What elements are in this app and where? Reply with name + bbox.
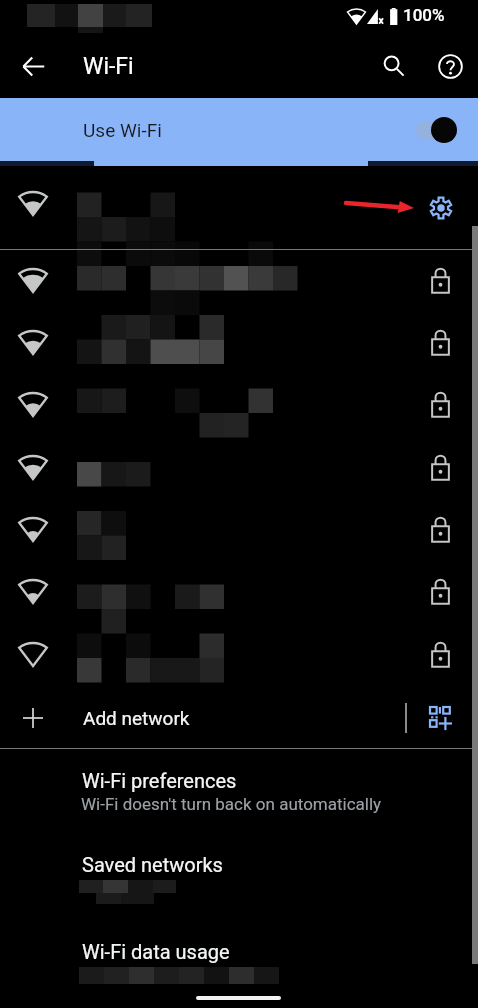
button[interactable] [0, 374, 478, 436]
staticText: Wi-Fi data usage [82, 940, 230, 963]
staticText: Wi-Fi preferences [82, 769, 237, 792]
button[interactable]: Back [11, 44, 55, 88]
staticText: 100% [403, 5, 445, 25]
button[interactable]: Wi-Fi data usage [0, 928, 478, 990]
staticText: Wi-Fi [83, 53, 134, 80]
button[interactable]: Use Wi-Fi [0, 98, 478, 161]
button[interactable] [0, 166, 478, 249]
button[interactable]: Saved networks [0, 840, 478, 902]
button[interactable] [0, 624, 478, 686]
button[interactable] [0, 437, 478, 499]
staticText: Use Wi-Fi [83, 119, 162, 141]
button[interactable] [0, 499, 478, 561]
button[interactable] [0, 312, 478, 374]
button[interactable] [0, 250, 478, 312]
staticText: Wi-Fi doesn't turn back on automatically [81, 794, 382, 814]
button[interactable]: Search [372, 44, 416, 88]
button[interactable]: Scan QR code [419, 696, 463, 740]
button[interactable]: Wi-Fi preferences [0, 755, 478, 817]
button[interactable] [0, 561, 478, 623]
button[interactable]: Help [428, 44, 472, 88]
button[interactable]: Add network [0, 687, 478, 749]
staticText: Saved networks [82, 853, 223, 876]
staticText: Add network [83, 707, 190, 729]
